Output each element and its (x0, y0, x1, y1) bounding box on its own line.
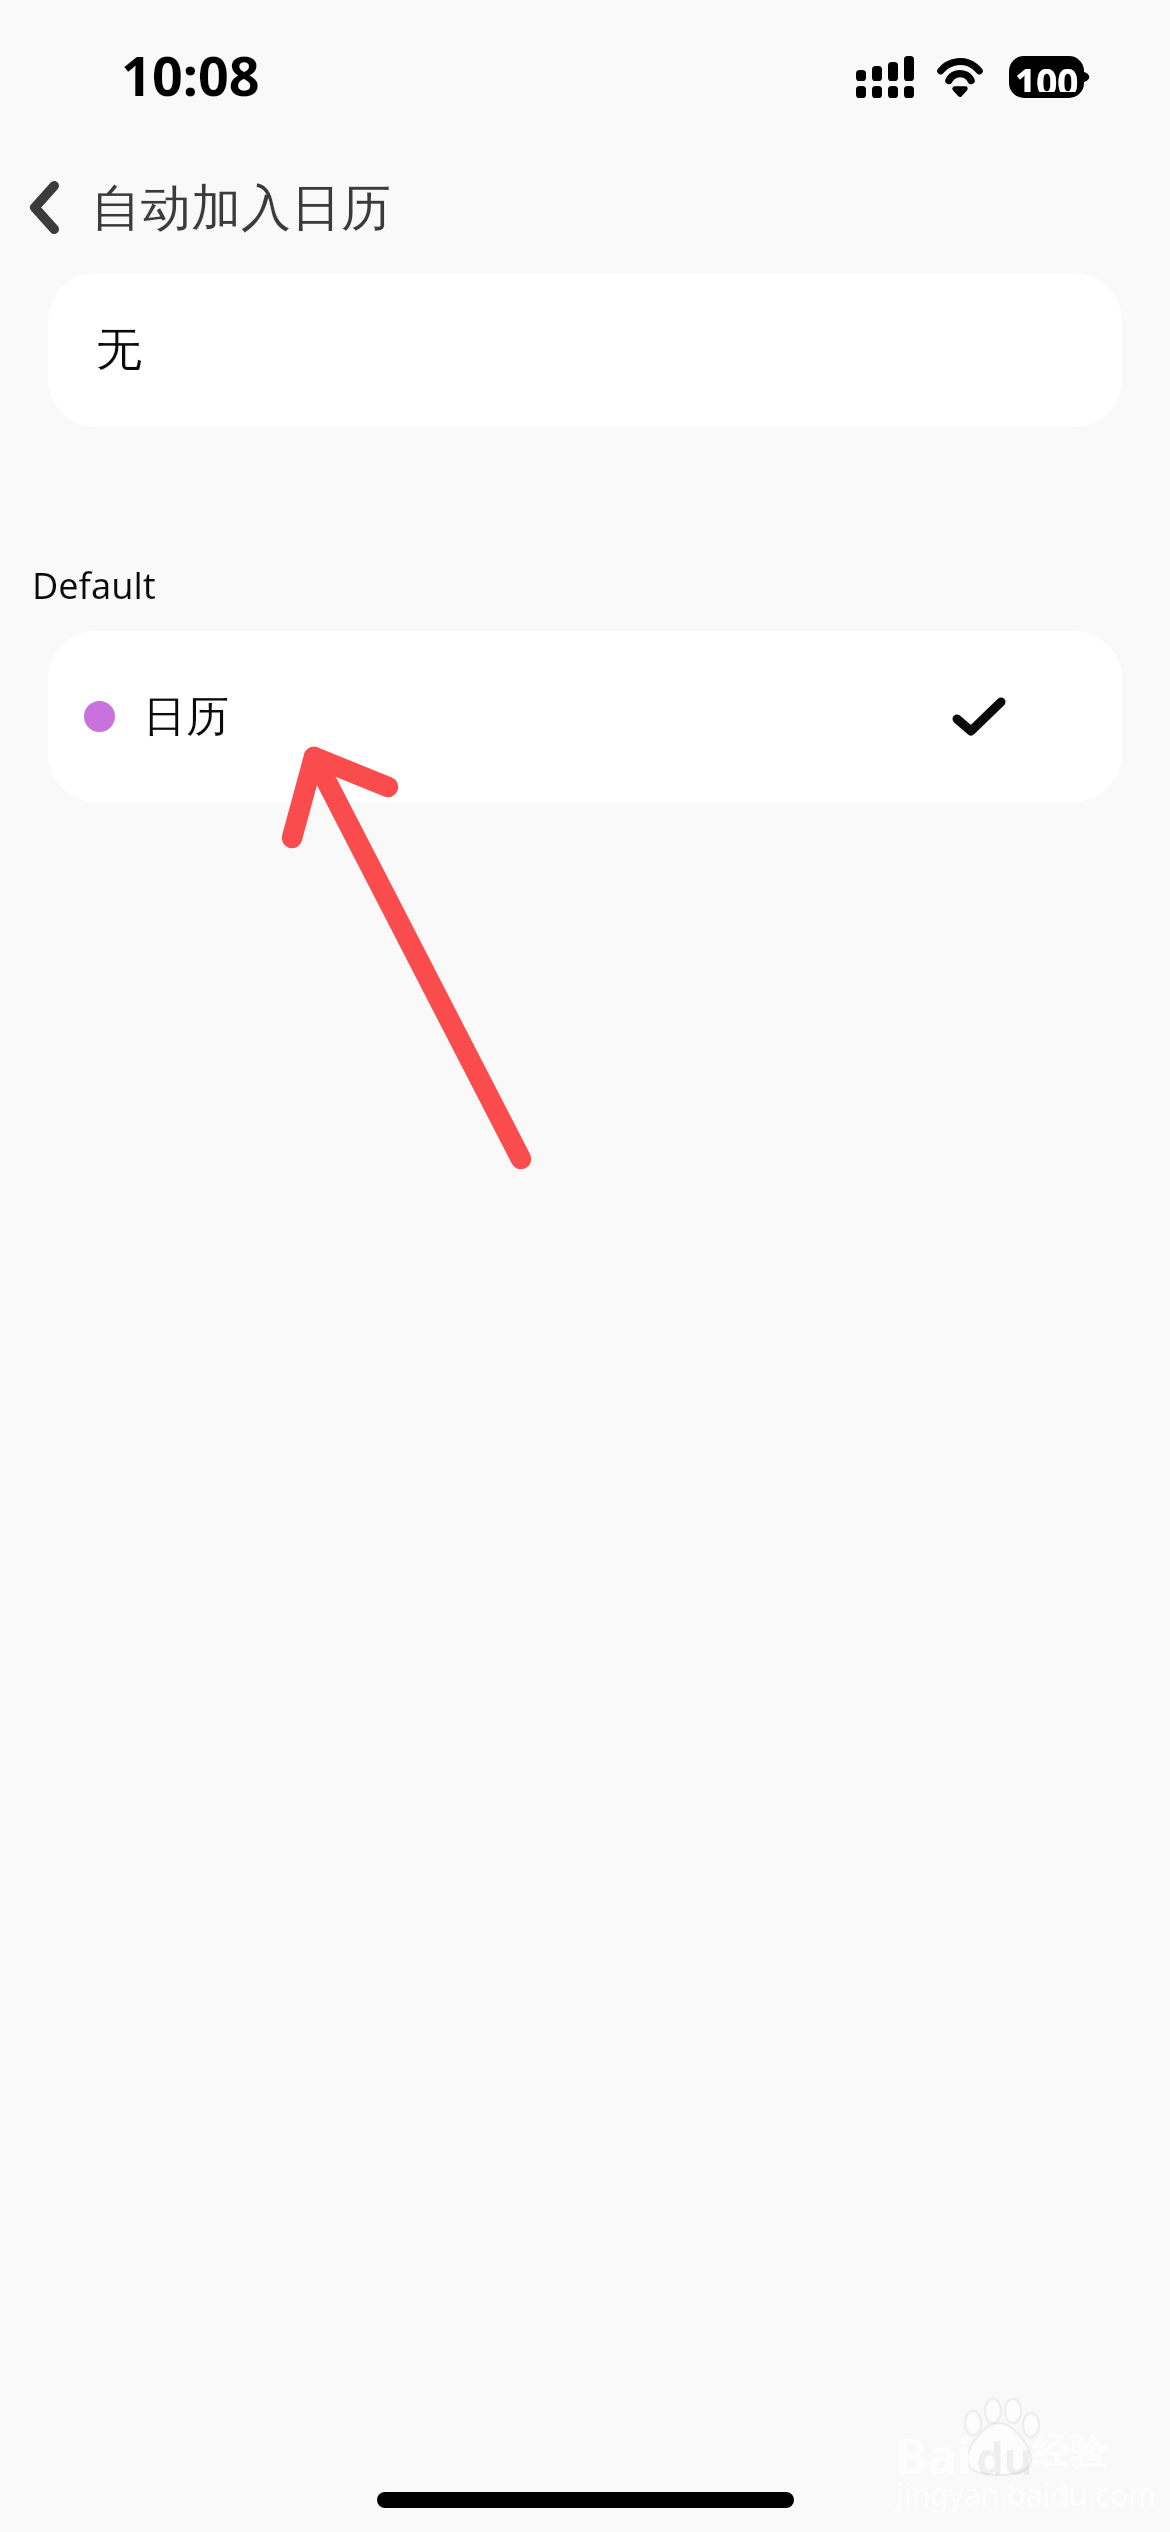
staticText: 100 (1015, 56, 1079, 92)
staticText: 10:08 (121, 38, 260, 112)
button[interactable]: 日历 (48, 631, 1122, 802)
staticText: 自动加入日历 (91, 177, 391, 240)
staticText: 无 (96, 321, 142, 379)
staticText: Default (32, 561, 156, 610)
staticText: du (976, 2428, 1033, 2488)
button[interactable]: 无 (48, 273, 1122, 427)
staticText: 日历 (143, 690, 229, 744)
button[interactable]: Back (4, 155, 84, 259)
